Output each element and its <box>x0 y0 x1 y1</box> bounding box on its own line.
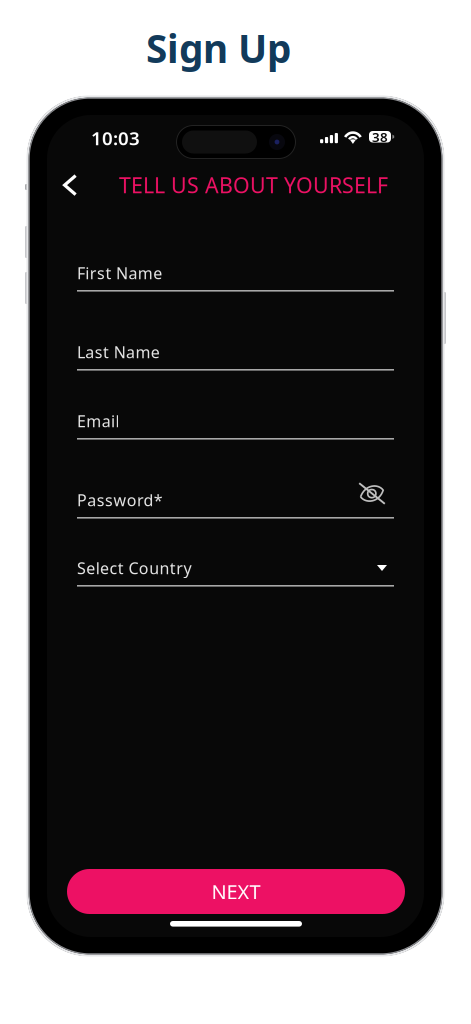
button[interactable]: Show password <box>358 482 386 505</box>
staticText: TELL US ABOUT YOURSELF <box>119 171 388 199</box>
button[interactable]: Back <box>50 165 90 205</box>
staticText: NEXT <box>211 878 260 905</box>
staticText: 10:03 <box>91 126 140 150</box>
staticText: Select Country <box>77 557 191 579</box>
staticText: Sign Up <box>146 22 291 74</box>
staticText: Last Name <box>77 341 160 363</box>
staticText: Password* <box>77 489 163 511</box>
button[interactable]: NEXT <box>67 869 405 914</box>
staticText: 38 <box>372 128 388 146</box>
button[interactable]: Choose country <box>377 565 387 571</box>
staticText: Email <box>77 410 119 432</box>
staticText: First Name <box>77 262 162 284</box>
